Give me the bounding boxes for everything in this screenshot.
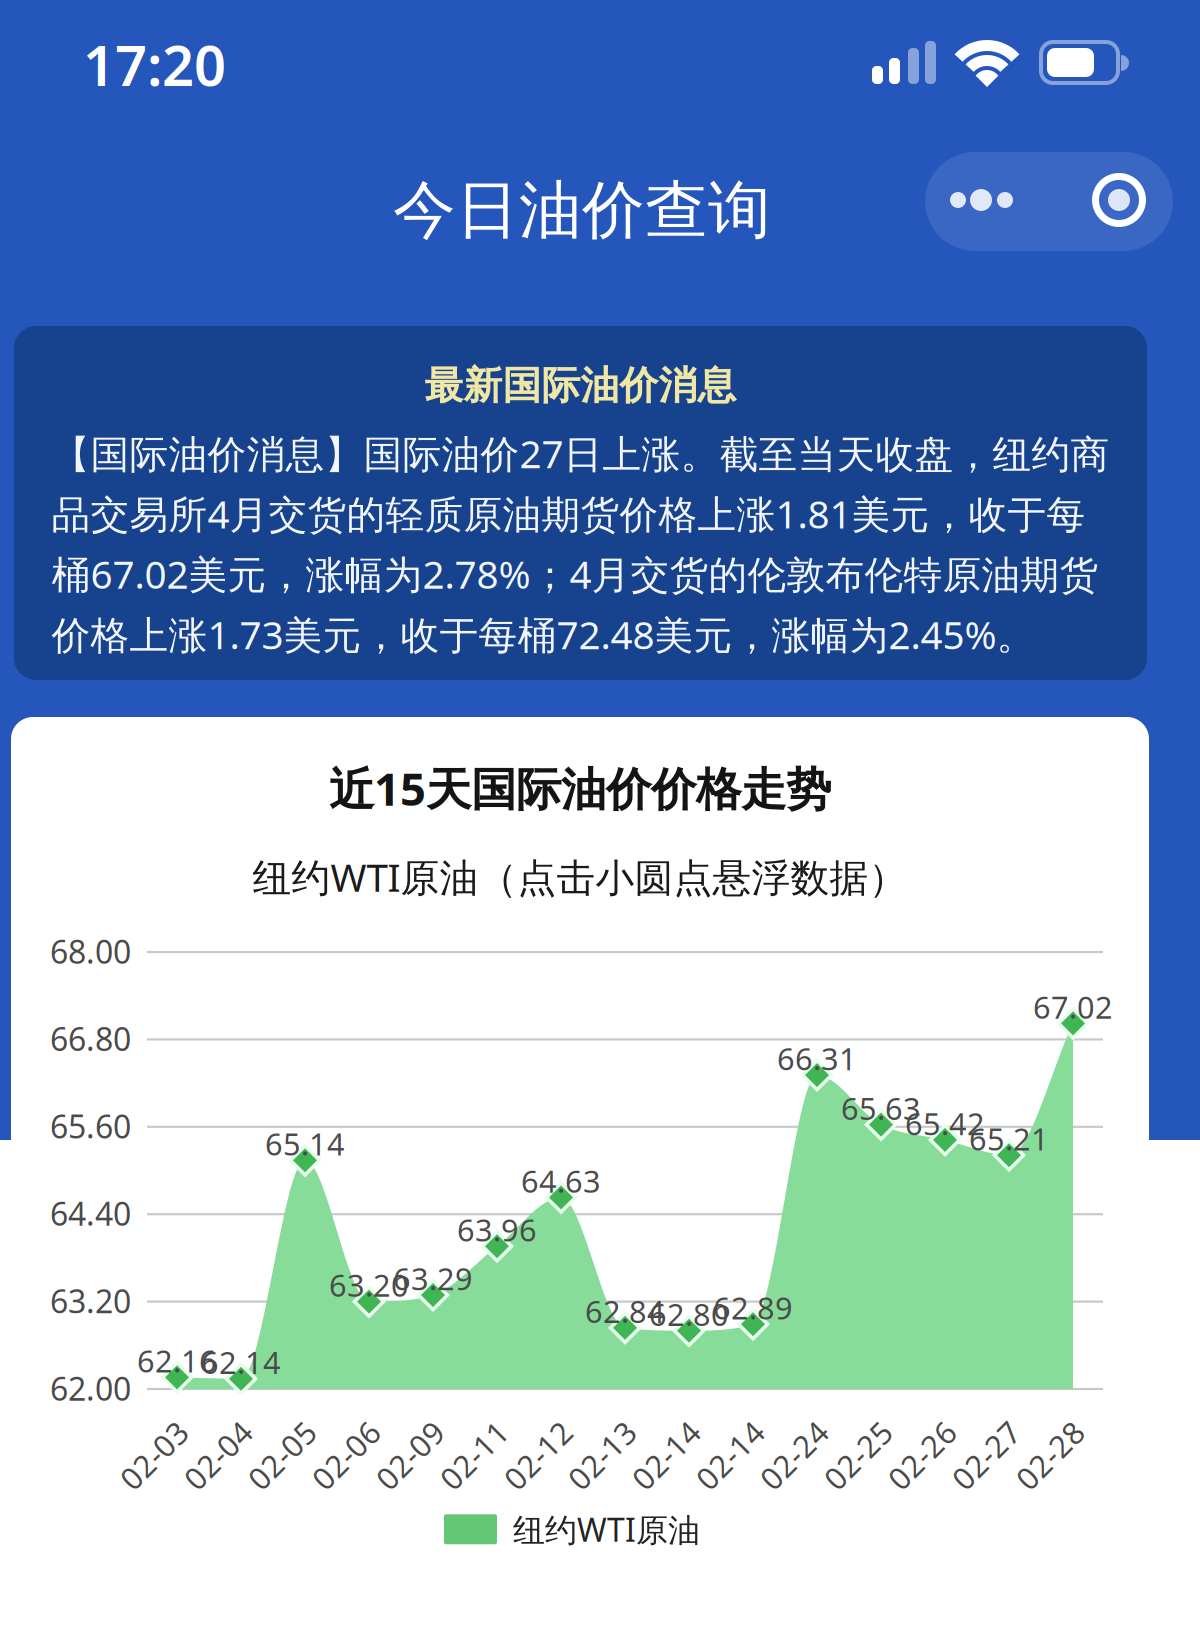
staticText: 【国际油价消息】国际油价27日上涨。截至当天收盘，纽约商品交易所4月交货的轻质原… xyxy=(51,427,1109,660)
staticText: 62.14 xyxy=(201,1342,281,1382)
staticText: 65.60 xyxy=(50,1105,131,1147)
staticText: 62.80 xyxy=(649,1294,729,1334)
staticText: 02-25 xyxy=(817,1435,899,1475)
staticText: 64.63 xyxy=(521,1160,601,1201)
staticText: 今日油价查询 xyxy=(393,172,771,249)
staticText: 65.63 xyxy=(841,1088,921,1128)
staticText: 65.21 xyxy=(969,1118,1049,1159)
staticText: 68.00 xyxy=(50,930,131,972)
staticText: 63.96 xyxy=(457,1209,537,1250)
staticText: 纽约WTI原油（点击小圆点悬浮数据） xyxy=(252,851,907,902)
staticText: 02-27 xyxy=(945,1435,1027,1475)
staticText: 02-11 xyxy=(433,1435,515,1475)
staticText: 64.40 xyxy=(50,1192,131,1235)
staticText: 66.80 xyxy=(50,1017,131,1060)
staticText: 66.31 xyxy=(777,1038,857,1079)
staticText: 纽约WTI原油 xyxy=(513,1508,700,1550)
staticText: 02-14 xyxy=(689,1435,771,1475)
staticText: 62.84 xyxy=(585,1291,665,1331)
staticText: 02-05 xyxy=(241,1435,323,1475)
staticText: 近15天国际油价价格走势 xyxy=(329,758,831,818)
staticText: 62.16 xyxy=(137,1340,217,1381)
staticText: 02-24 xyxy=(753,1435,835,1475)
staticText: 最新国际油价消息 xyxy=(424,362,736,409)
staticText: 02-12 xyxy=(497,1435,579,1475)
staticText: 65.42 xyxy=(905,1103,985,1144)
staticText: 02-09 xyxy=(369,1435,451,1475)
staticText: 63.20 xyxy=(50,1280,131,1322)
staticText: 02-28 xyxy=(1009,1435,1091,1475)
staticText: 62.89 xyxy=(713,1287,793,1328)
staticText: 65.14 xyxy=(265,1123,345,1164)
staticText: 02-03 xyxy=(113,1435,195,1475)
staticText: 02-06 xyxy=(305,1435,387,1475)
staticText: 63.29 xyxy=(393,1258,473,1299)
staticText: 63.20 xyxy=(329,1265,409,1305)
staticText: 02-13 xyxy=(561,1435,643,1475)
button[interactable]: More xyxy=(925,152,1173,251)
staticText: 02-14 xyxy=(625,1435,707,1475)
staticText: 02-26 xyxy=(881,1435,963,1475)
staticText: 62.00 xyxy=(50,1367,131,1409)
staticText: 67.02 xyxy=(1033,986,1113,1027)
staticText: 17:20 xyxy=(83,27,226,101)
staticText: 02-04 xyxy=(177,1435,259,1475)
